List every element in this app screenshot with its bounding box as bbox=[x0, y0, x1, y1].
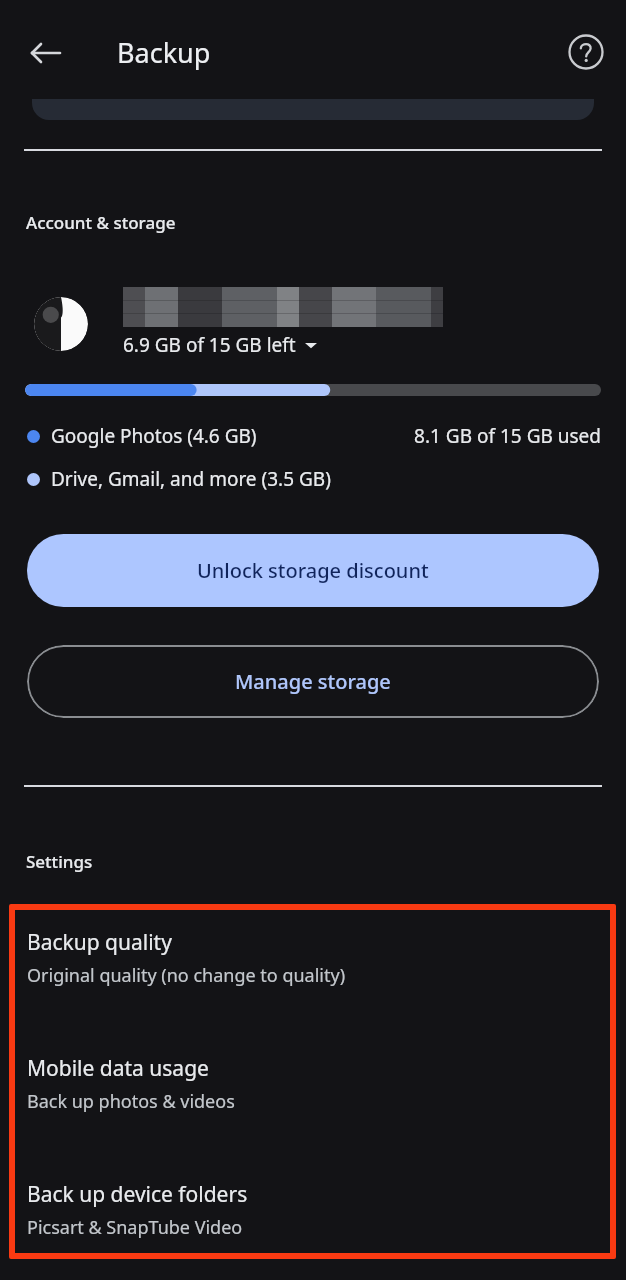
staticText: Account & storage bbox=[26, 211, 176, 234]
staticText: Unlock storage discount bbox=[197, 557, 429, 584]
staticText: Picsart & SnapTube Video bbox=[27, 1215, 243, 1240]
staticText: Backup bbox=[117, 34, 211, 71]
staticText: Google Photos (4.6 GB) bbox=[51, 423, 257, 449]
button[interactable]: Unlock storage discount bbox=[27, 534, 599, 607]
staticText: 8.1 GB of 15 GB used bbox=[291, 423, 601, 449]
staticText: 6.9 GB of 15 GB left bbox=[123, 332, 296, 358]
staticText: Original quality (no change to quality) bbox=[27, 963, 346, 988]
button[interactable]: Backup quality bbox=[27, 928, 599, 988]
button[interactable]: Back bbox=[22, 29, 70, 77]
button[interactable]: 6.9 GB of 15 GB left bbox=[123, 332, 317, 358]
staticText: Settings bbox=[26, 850, 93, 873]
button[interactable]: Back up device folders bbox=[27, 1180, 599, 1240]
staticText: Back up device folders bbox=[27, 1180, 248, 1209]
button[interactable]: Manage storage bbox=[27, 645, 599, 718]
staticText: Mobile data usage bbox=[27, 1054, 209, 1083]
staticText: Drive, Gmail, and more (3.5 GB) bbox=[51, 466, 331, 492]
staticText: Backup quality bbox=[27, 928, 172, 957]
staticText: Manage storage bbox=[235, 668, 391, 695]
button[interactable] bbox=[32, 99, 594, 120]
button[interactable]: Account avatar bbox=[34, 297, 88, 351]
staticText: Back up photos & videos bbox=[27, 1089, 235, 1114]
button[interactable]: Help bbox=[562, 28, 610, 76]
button[interactable]: Mobile data usage bbox=[27, 1054, 599, 1114]
